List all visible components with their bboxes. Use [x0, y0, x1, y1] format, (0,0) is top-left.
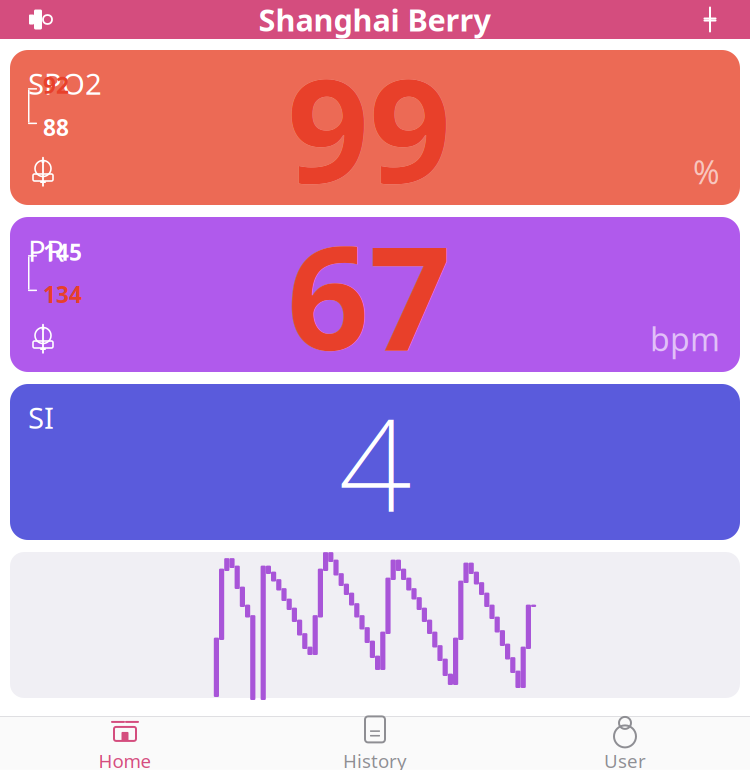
staticText: 67 [287, 199, 451, 390]
staticText: 134 [43, 279, 82, 309]
button[interactable]: Home [0, 707, 250, 770]
staticText: bpm [650, 317, 720, 360]
staticText: 67 [287, 199, 451, 390]
staticText: History [343, 748, 407, 770]
staticText: 99 [287, 32, 451, 223]
staticText: 4 [338, 377, 411, 547]
button[interactable]: Alarm muted [26, 155, 60, 189]
staticText: % [693, 150, 720, 193]
button[interactable]: User [500, 707, 750, 770]
staticText: PR [28, 231, 64, 270]
staticText: 99 [287, 32, 451, 223]
staticText: User [604, 748, 646, 770]
staticText: 99 [287, 32, 451, 223]
staticText: 145 [43, 237, 82, 267]
staticText: 88 [43, 112, 69, 142]
staticText: Home [98, 748, 151, 770]
staticText: SI [28, 398, 54, 437]
staticText: 92 [43, 70, 69, 100]
button[interactable]: History [250, 707, 500, 770]
button[interactable]: Bluetooth [688, 0, 732, 39]
staticText: Shanghai Berry [258, 0, 491, 40]
button[interactable]: Sound [18, 0, 62, 39]
staticText: SPO2 [28, 64, 102, 103]
button[interactable]: Alarm muted [26, 322, 60, 356]
staticText: 67 [287, 199, 451, 390]
